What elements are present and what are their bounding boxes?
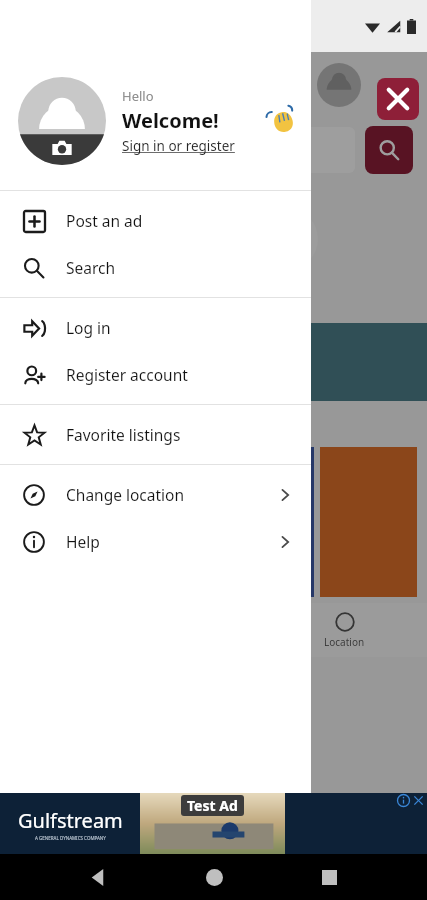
staticText: Register account [66, 364, 293, 385]
staticText: Post an ad [66, 210, 293, 231]
staticText: A GENERAL DYNAMICS COMPANY [35, 835, 106, 841]
button[interactable]: Back [80, 859, 116, 895]
staticText: Gulfstream [18, 807, 123, 834]
button[interactable]: Change location [0, 471, 311, 518]
button[interactable]: Help [0, 518, 311, 565]
button[interactable]: Register account [0, 351, 311, 398]
staticText: Log in [66, 317, 293, 338]
staticText: Hello [122, 87, 154, 105]
staticText: Test Ad [187, 796, 238, 815]
button[interactable]: Search [0, 244, 311, 291]
button[interactable]: Ad info [397, 794, 410, 807]
staticText: Change location [66, 484, 277, 505]
button[interactable]: Log in [0, 304, 311, 351]
button[interactable]: Close ad [412, 794, 425, 807]
button[interactable]: Hello [0, 52, 311, 190]
button[interactable]: Favorite listings [0, 411, 311, 458]
staticText: Location [324, 635, 365, 649]
button[interactable]: Recents [311, 859, 347, 895]
staticText: Sign in or register [122, 137, 235, 155]
button[interactable]: Home [196, 859, 232, 895]
staticText: Help [66, 531, 277, 552]
button[interactable]: Gulfstream [0, 793, 427, 854]
staticText: Welcome! [122, 107, 219, 134]
button[interactable]: Post an ad [0, 197, 311, 244]
button[interactable]: Close [377, 78, 419, 120]
staticText: Search [66, 257, 293, 278]
staticText: Favorite listings [66, 424, 293, 445]
staticText: Wine [33, 275, 61, 291]
